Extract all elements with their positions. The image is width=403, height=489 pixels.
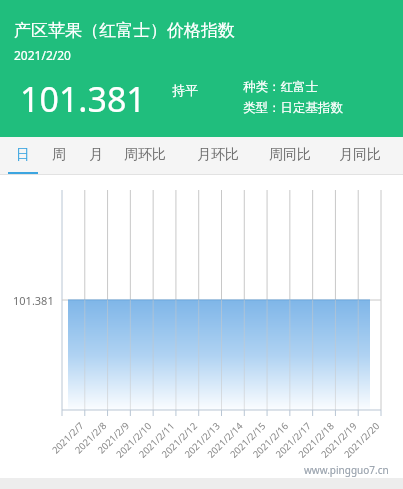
- staticText: 2021/2/20: [14, 47, 71, 63]
- staticText: 产区苹果（红富士）价格指数: [14, 20, 235, 41]
- staticText: 周同比: [269, 146, 311, 164]
- button[interactable]: 月同比: [331, 137, 393, 175]
- staticText: 种类：红富士: [243, 79, 318, 95]
- button[interactable]: 月环比: [189, 137, 251, 175]
- staticText: 101.381: [20, 76, 146, 122]
- staticText: 周环比: [124, 146, 166, 164]
- staticText: 月环比: [197, 146, 239, 164]
- button[interactable]: 周: [44, 137, 74, 175]
- staticText: 周: [52, 146, 66, 164]
- button[interactable]: 周环比: [116, 137, 178, 175]
- staticText: 类型：日定基指数: [243, 100, 343, 116]
- button[interactable]: 日: [8, 137, 38, 175]
- button[interactable]: 周同比: [261, 137, 323, 175]
- staticText: 月同比: [339, 146, 381, 164]
- staticText: 日: [16, 146, 30, 164]
- staticText: 持平: [172, 82, 198, 98]
- staticText: 月: [89, 146, 103, 164]
- button[interactable]: 月: [81, 137, 111, 175]
